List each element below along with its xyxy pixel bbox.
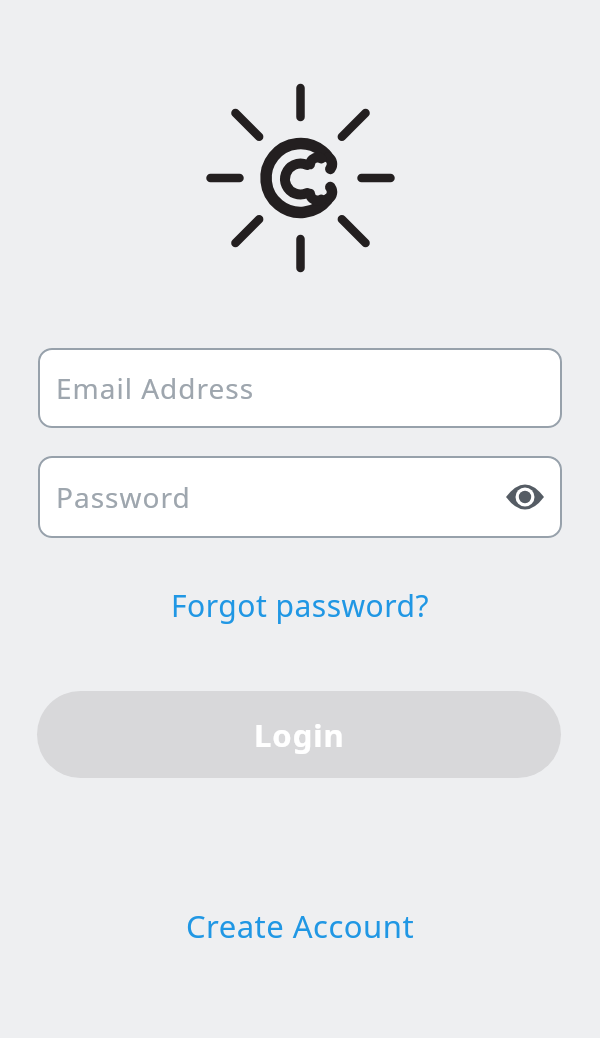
button[interactable]: Password xyxy=(38,456,562,538)
staticText: Login xyxy=(254,714,345,756)
button[interactable]: Email Address xyxy=(38,348,562,428)
staticText: Password xyxy=(56,478,191,516)
button[interactable]: Create Account xyxy=(0,905,600,947)
button[interactable]: Forgot password? xyxy=(0,585,600,626)
button[interactable]: Login xyxy=(37,691,561,778)
button[interactable] xyxy=(506,485,544,509)
staticText: Email Address xyxy=(56,369,255,407)
